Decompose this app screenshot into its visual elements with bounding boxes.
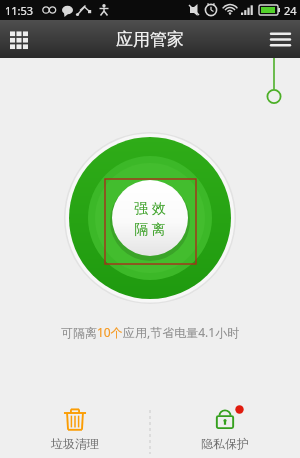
button[interactable]: 强效隔离 [64, 132, 236, 304]
staticText: 应用,节省电量4.1小时 [123, 324, 240, 340]
button[interactable]: 垃圾清理 [0, 400, 150, 458]
button[interactable]: Apps grid [0, 20, 38, 58]
button[interactable]: Menu [260, 20, 300, 58]
staticText: 10个 [97, 324, 123, 340]
button[interactable]: 隐私保护 [150, 400, 300, 458]
staticText: 隔 离 [134, 219, 166, 238]
staticText: 隐私保护 [201, 436, 249, 451]
staticText: 应用管家 [116, 29, 184, 50]
staticText: 垃圾清理 [51, 436, 99, 451]
staticText: 11:53 [5, 3, 34, 18]
staticText: 24 [284, 3, 297, 18]
staticText: 强 效 [134, 198, 166, 217]
staticText: 可隔离 [61, 325, 97, 340]
